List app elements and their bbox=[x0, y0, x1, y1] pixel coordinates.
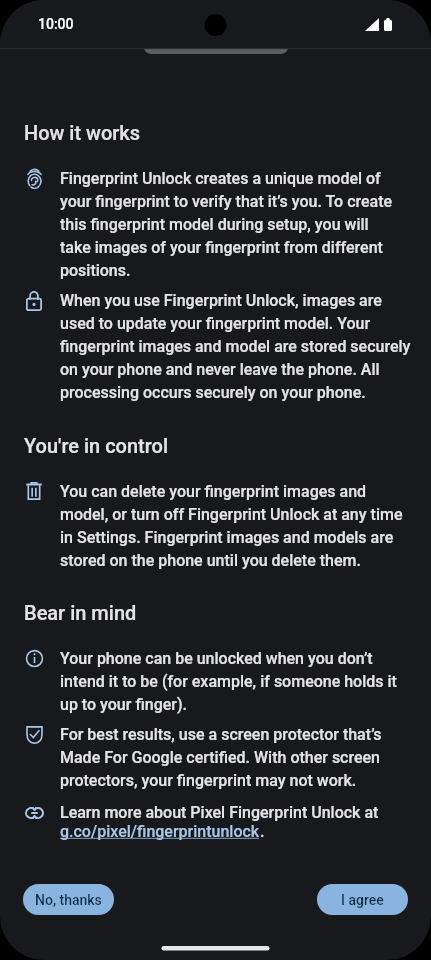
staticText: No, thanks bbox=[35, 892, 102, 908]
staticText: Learn more about Pixel Fingerprint Unloc… bbox=[60, 803, 379, 822]
button[interactable]: No, thanks bbox=[23, 884, 114, 915]
staticText: Your phone can be unlocked when you don’… bbox=[60, 649, 397, 714]
button[interactable]: g.co/pixel/fingerprintunlock bbox=[60, 822, 265, 841]
staticText: You're in control bbox=[24, 434, 169, 457]
staticText: 10:00 bbox=[38, 16, 74, 32]
staticText: Bear in mind bbox=[24, 601, 137, 624]
staticText: How it works bbox=[24, 121, 141, 144]
staticText: g.co/pixel/fingerprintunlock bbox=[60, 822, 260, 841]
staticText: . bbox=[260, 822, 265, 841]
button[interactable]: I agree bbox=[317, 884, 408, 915]
staticText: For best results, use a screen protector… bbox=[60, 725, 382, 790]
staticText: Fingerprint Unlock creates a unique mode… bbox=[60, 169, 393, 280]
staticText: You can delete your fingerprint images a… bbox=[60, 482, 403, 570]
staticText: I agree bbox=[341, 892, 384, 908]
staticText: When you use Fingerprint Unlock, images … bbox=[60, 291, 411, 402]
